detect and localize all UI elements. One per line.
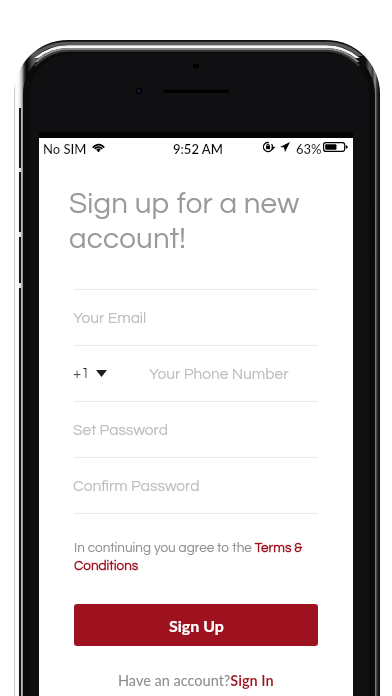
button[interactable]: Have an account?Sign In <box>114 668 278 693</box>
button[interactable]: Confirm Password <box>39 458 353 513</box>
button[interactable]: +1 <box>73 366 107 381</box>
staticText: Your Phone Number <box>149 366 289 382</box>
staticText: No SIM <box>43 141 87 157</box>
button[interactable]: Sign Up <box>74 604 318 646</box>
staticText: +1 <box>73 366 90 381</box>
staticText: 9:52 AM <box>173 141 223 157</box>
staticText: Your Email <box>73 310 147 326</box>
button[interactable]: Set Password <box>39 402 353 457</box>
staticText: 63% <box>296 141 322 157</box>
staticText: In continuing you agree to the Terms & C… <box>74 541 318 573</box>
staticText: Set Password <box>73 422 168 438</box>
staticText: Confirm Password <box>73 478 200 494</box>
staticText: Sign up for a new account! <box>69 189 300 254</box>
button[interactable]: Your Email <box>39 290 353 345</box>
staticText: Sign Up <box>169 616 224 635</box>
staticText: Have an account?Sign In <box>118 672 274 689</box>
